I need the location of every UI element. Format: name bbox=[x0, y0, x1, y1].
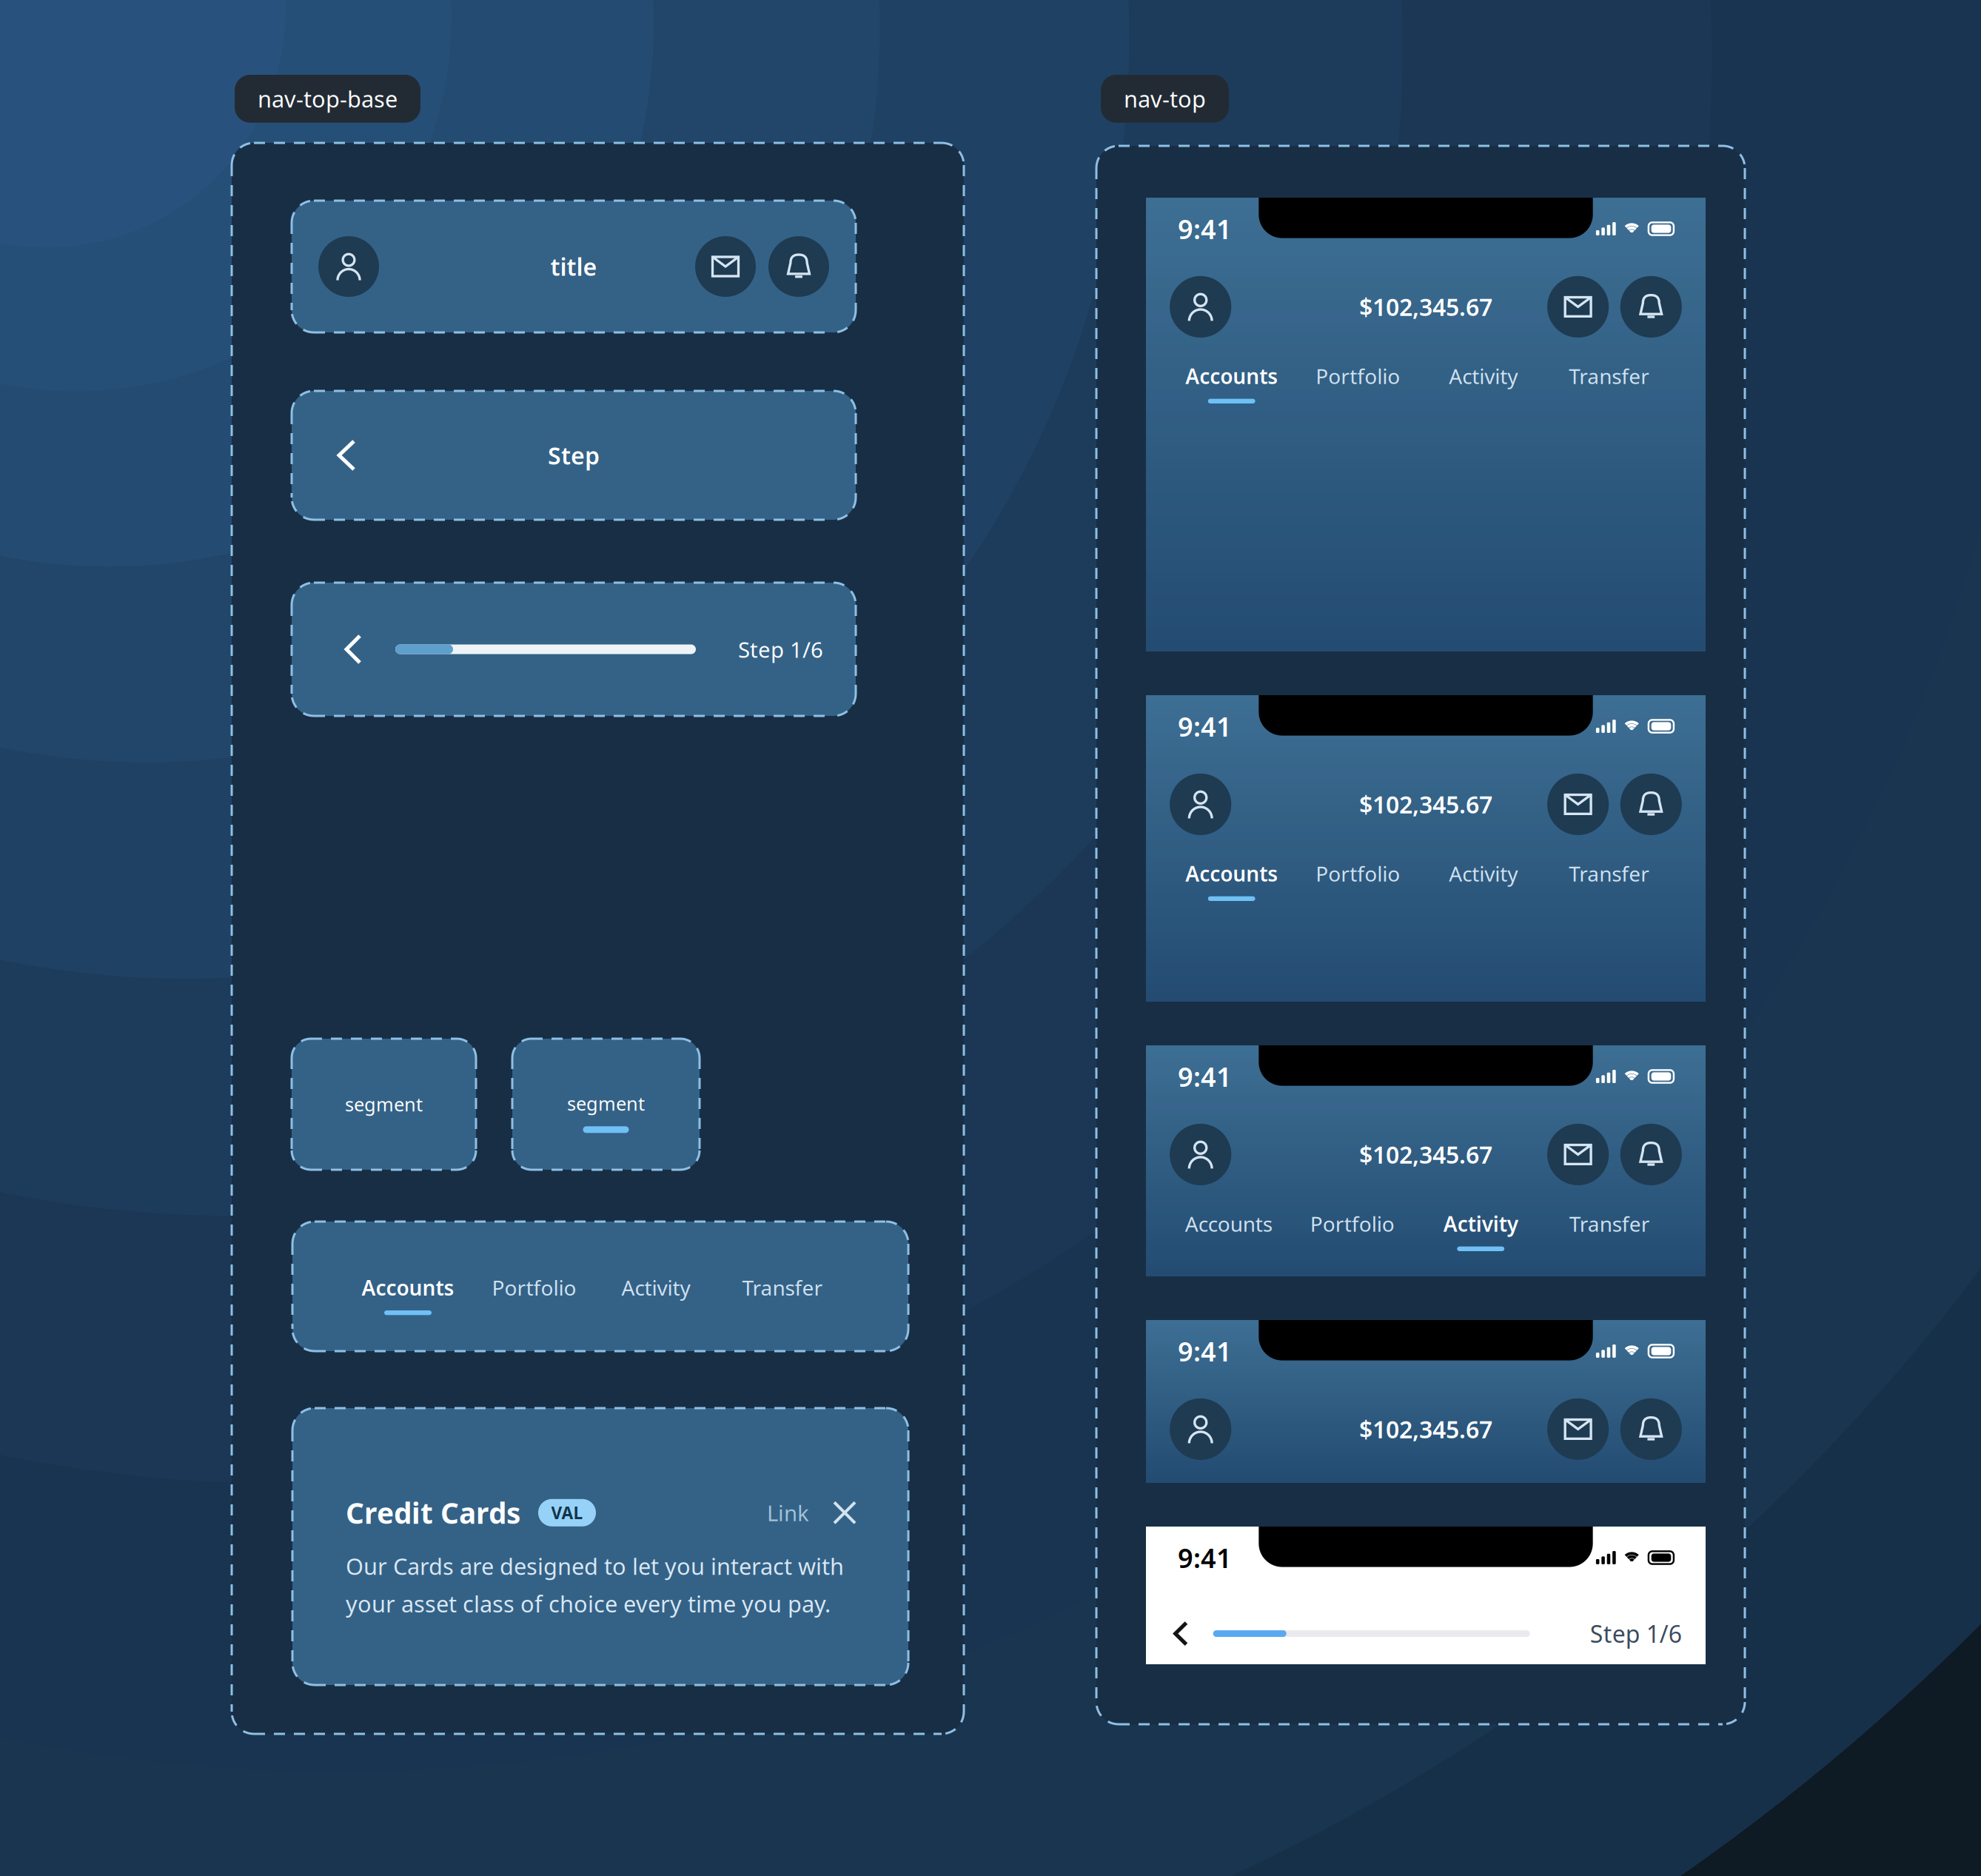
staticText: 9:41 bbox=[1178, 1059, 1232, 1094]
staticText: $102,345.67 bbox=[1359, 1413, 1492, 1445]
staticText: Activity bbox=[1443, 1210, 1518, 1237]
staticText: $102,345.67 bbox=[1359, 1139, 1492, 1170]
staticText: Accounts bbox=[1185, 1210, 1272, 1237]
button[interactable]: Messages bbox=[695, 236, 756, 297]
button[interactable]: Portfolio bbox=[1316, 362, 1400, 403]
button[interactable]: Transfer bbox=[1569, 1210, 1650, 1251]
staticText: Link bbox=[767, 1498, 809, 1527]
button[interactable]: Messages bbox=[1547, 276, 1609, 338]
staticText: Portfolio bbox=[492, 1274, 576, 1301]
staticText: Activity bbox=[1449, 860, 1518, 887]
button[interactable]: Notifications bbox=[1620, 276, 1682, 338]
button[interactable]: Accounts bbox=[1185, 1210, 1272, 1251]
button[interactable]: Accounts bbox=[1185, 860, 1278, 901]
staticText: Transfer bbox=[1569, 860, 1649, 887]
button[interactable]: Activity bbox=[621, 1274, 690, 1315]
staticText: nav-top-base bbox=[258, 84, 398, 114]
button[interactable]: Portfolio bbox=[1310, 1210, 1394, 1251]
button[interactable]: Messages bbox=[1547, 1398, 1609, 1460]
button[interactable]: Activity bbox=[1449, 860, 1518, 901]
staticText: Step 1/6 bbox=[1590, 1618, 1682, 1649]
staticText: Credit Cards bbox=[346, 1494, 520, 1532]
button[interactable]: Accounts bbox=[362, 1274, 454, 1315]
staticText: Our Cards are designed to let you intera… bbox=[346, 1551, 844, 1619]
button[interactable]: Close bbox=[834, 1502, 855, 1523]
button[interactable]: Profile bbox=[1170, 276, 1231, 338]
staticText: Transfer bbox=[1569, 1210, 1650, 1237]
button[interactable]: Notifications bbox=[1620, 773, 1682, 835]
button[interactable]: Transfer bbox=[742, 1274, 823, 1315]
button[interactable]: Portfolio bbox=[1316, 860, 1400, 901]
button[interactable]: Profile bbox=[1170, 1124, 1231, 1185]
button[interactable]: nav-top-base bbox=[235, 75, 420, 123]
button[interactable]: nav-top bbox=[1101, 75, 1229, 123]
button[interactable]: Accounts bbox=[1185, 362, 1278, 403]
staticText: Portfolio bbox=[1316, 362, 1400, 390]
button[interactable]: Back bbox=[1170, 1617, 1192, 1650]
button[interactable]: Activity bbox=[1443, 1210, 1518, 1251]
staticText: 9:41 bbox=[1178, 1333, 1232, 1369]
button[interactable]: Profile bbox=[1170, 773, 1231, 835]
staticText: segment bbox=[345, 1092, 423, 1117]
staticText: Activity bbox=[621, 1274, 690, 1301]
button[interactable]: Portfolio bbox=[492, 1274, 576, 1315]
staticText: Portfolio bbox=[1316, 860, 1400, 887]
staticText: title bbox=[550, 251, 597, 282]
staticText: VAL bbox=[551, 1502, 583, 1524]
staticText: Accounts bbox=[1185, 860, 1278, 887]
button[interactable]: Notifications bbox=[1620, 1124, 1682, 1185]
button[interactable]: Messages bbox=[1547, 1124, 1609, 1185]
staticText: 9:41 bbox=[1178, 709, 1232, 744]
staticText: $102,345.67 bbox=[1359, 291, 1492, 323]
button[interactable]: Profile bbox=[318, 236, 379, 297]
staticText: 9:41 bbox=[1178, 211, 1232, 246]
staticText: nav-top bbox=[1124, 84, 1206, 114]
button[interactable]: Notifications bbox=[1620, 1398, 1682, 1460]
staticText: Step 1/6 bbox=[738, 635, 823, 664]
button[interactable]: Activity bbox=[1449, 362, 1518, 403]
button[interactable]: Notifications bbox=[768, 236, 829, 297]
staticText: Step bbox=[548, 440, 600, 471]
staticText: Transfer bbox=[1569, 362, 1649, 390]
button[interactable]: Profile bbox=[1170, 1398, 1231, 1460]
staticText: segment bbox=[567, 1091, 645, 1116]
staticText: Accounts bbox=[1185, 362, 1278, 390]
staticText: $102,345.67 bbox=[1359, 789, 1492, 820]
button[interactable]: Transfer bbox=[1569, 362, 1649, 403]
button[interactable]: Back bbox=[324, 626, 370, 673]
button[interactable]: Messages bbox=[1547, 773, 1609, 835]
button[interactable]: Back bbox=[327, 429, 366, 481]
staticText: Portfolio bbox=[1310, 1210, 1394, 1237]
staticText: Accounts bbox=[362, 1274, 454, 1301]
staticText: Transfer bbox=[742, 1274, 823, 1301]
staticText: 9:41 bbox=[1178, 1540, 1232, 1575]
button[interactable]: Link bbox=[767, 1498, 809, 1527]
staticText: Activity bbox=[1449, 362, 1518, 390]
button[interactable]: Transfer bbox=[1569, 860, 1649, 901]
